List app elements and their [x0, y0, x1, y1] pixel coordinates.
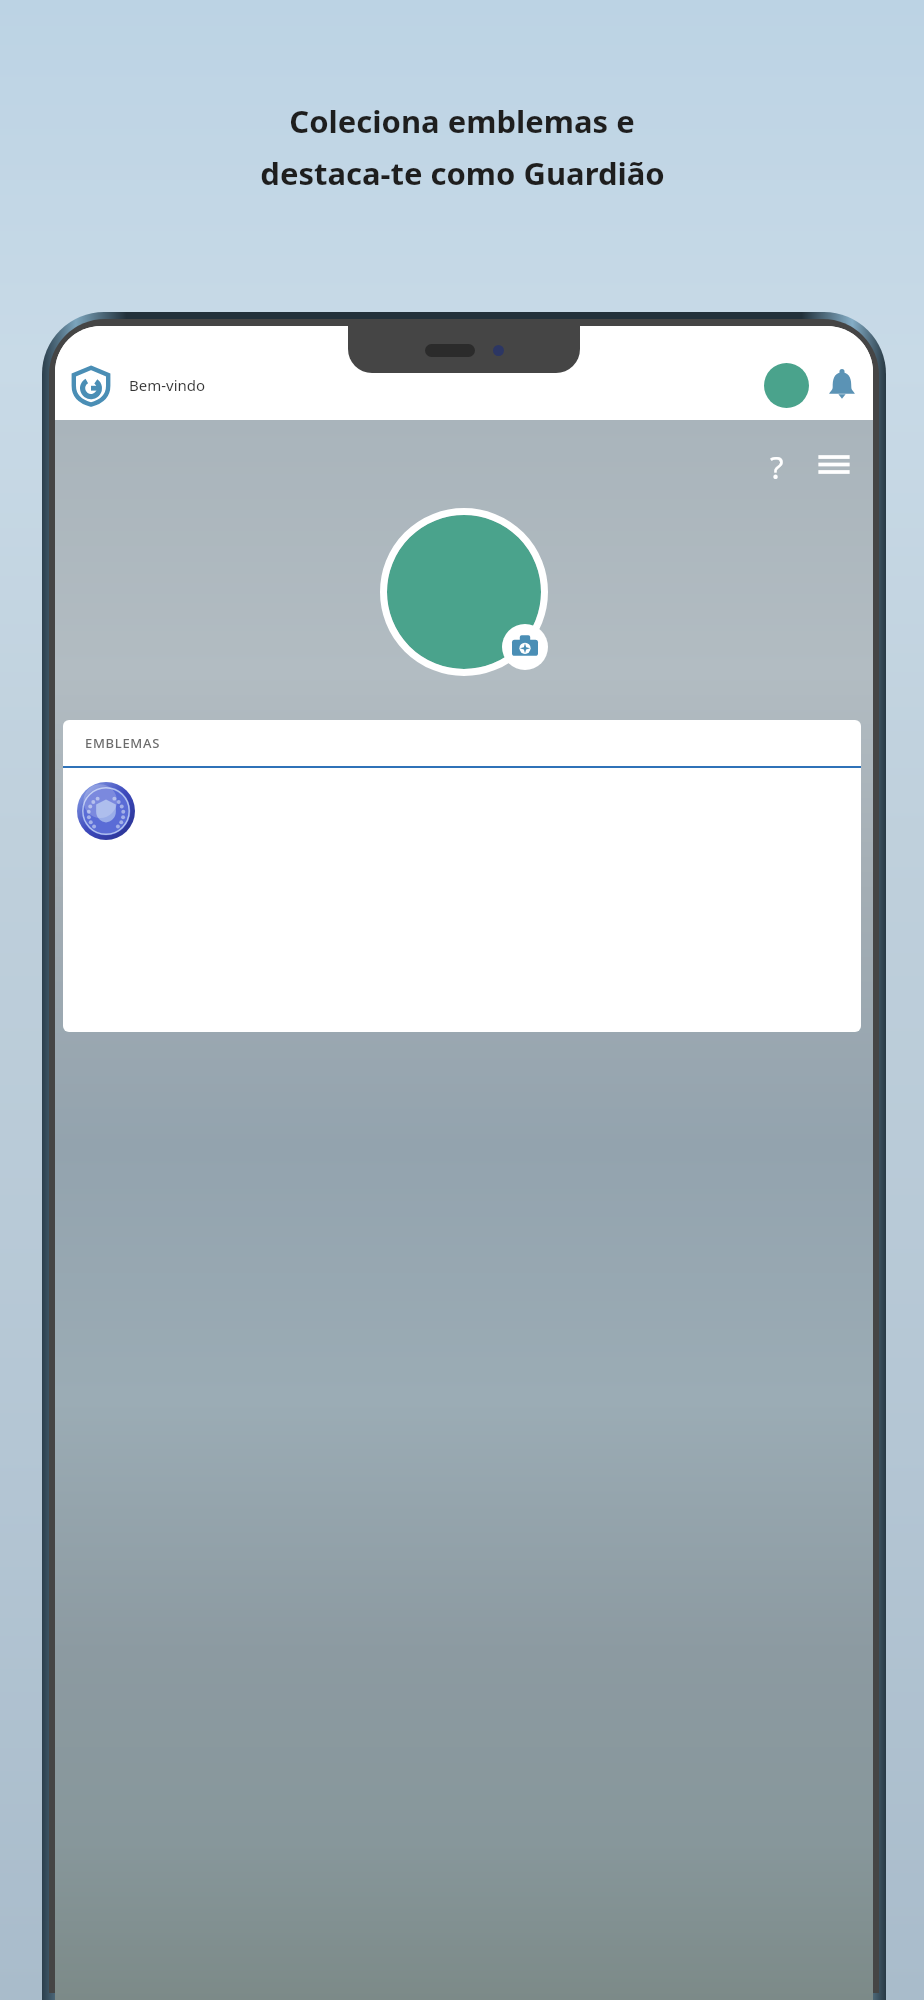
staticText: Coleciona emblemas e [289, 100, 635, 142]
button[interactable]: Notifications [827, 370, 857, 400]
staticText: destaca-te como Guardião [260, 152, 665, 194]
staticText: EMBLEMAS [85, 734, 161, 752]
button[interactable]: Change photo [502, 624, 548, 670]
staticText: Bem-vindo [129, 375, 206, 395]
staticText: ? [770, 446, 784, 482]
button[interactable]: Menu [817, 447, 851, 481]
button[interactable]: Help [759, 446, 795, 482]
button[interactable]: Emblem Guardião [77, 782, 135, 840]
button[interactable]: Profile [764, 363, 809, 408]
button[interactable]: Guardião logo [71, 365, 111, 405]
button[interactable]: EMBLEMAS [63, 720, 861, 766]
